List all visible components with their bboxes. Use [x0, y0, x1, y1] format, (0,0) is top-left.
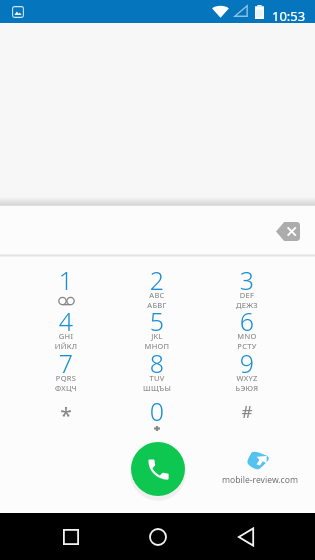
staticText: #	[203, 400, 291, 423]
button[interactable]: *	[22, 393, 110, 435]
staticText: 8	[113, 346, 201, 380]
button[interactable]: #	[203, 393, 291, 435]
button[interactable]: 2	[113, 262, 201, 304]
staticText: 7	[22, 346, 110, 380]
staticText: ЬЭЮЯ	[203, 383, 291, 393]
button[interactable]: 5	[113, 303, 201, 345]
staticText: 6	[203, 304, 291, 338]
staticText: JKL	[113, 331, 201, 341]
staticText: ШЩЪЫ	[113, 383, 201, 393]
staticText: ФХЦЧ	[22, 383, 110, 393]
staticText: 4	[22, 304, 110, 338]
button[interactable]: 9	[203, 345, 291, 387]
button[interactable]: 0	[113, 393, 201, 435]
staticText: WXYZ	[203, 373, 291, 383]
staticText: 9	[203, 346, 291, 380]
staticText: *	[22, 401, 110, 430]
staticText: 1	[22, 263, 110, 297]
staticText: ДЕЖЗ	[203, 300, 291, 310]
staticText: PQRS	[22, 373, 110, 383]
staticText: 3	[203, 263, 291, 297]
staticText: РСТУ	[203, 341, 291, 351]
button[interactable]: Backspace	[266, 209, 310, 253]
button[interactable]: 6	[203, 303, 291, 345]
button[interactable]: 3	[203, 262, 291, 304]
staticText: МНОП	[113, 341, 201, 351]
button[interactable]: 4	[22, 303, 110, 345]
staticText: АБВГ	[113, 300, 201, 310]
staticText: ABC	[113, 290, 201, 300]
staticText: TUV	[113, 373, 201, 383]
staticText: ИЙКЛ	[22, 341, 110, 351]
other: Screenshot notification	[12, 6, 24, 18]
staticText: MNO	[203, 331, 291, 341]
staticText: 10:53	[272, 7, 306, 25]
staticText: 0	[113, 394, 201, 428]
staticText: mobile-review.com	[222, 474, 298, 486]
button[interactable]: Call	[131, 442, 185, 496]
staticText: 5	[113, 304, 201, 338]
button[interactable]: 8	[113, 345, 201, 387]
button[interactable]: 1	[22, 262, 110, 304]
button[interactable]: Back	[224, 513, 268, 560]
button[interactable]: 7	[22, 345, 110, 387]
button[interactable]: Recents	[49, 513, 93, 560]
staticText: 2	[113, 263, 201, 297]
staticText: GHI	[22, 331, 110, 341]
staticText: DEF	[203, 290, 291, 300]
button[interactable]: Home	[136, 513, 180, 560]
